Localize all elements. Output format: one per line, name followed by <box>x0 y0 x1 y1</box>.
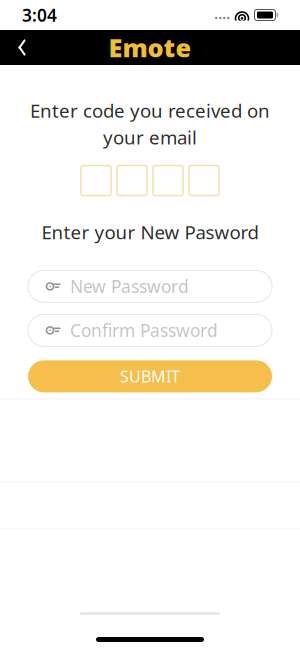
staticText: New Password <box>70 275 189 298</box>
staticText: 3:04 <box>22 3 57 26</box>
staticText: Confirm Password <box>70 319 218 342</box>
staticText: SUBMIT <box>120 366 180 387</box>
button[interactable]: Back <box>0 30 44 65</box>
staticText: Enter code you received on <box>30 98 270 123</box>
button[interactable]: SUBMIT <box>28 360 272 392</box>
staticText: Enter your New Pasword <box>41 220 258 244</box>
staticText: Emote <box>108 31 191 64</box>
staticText: your email <box>103 125 197 150</box>
